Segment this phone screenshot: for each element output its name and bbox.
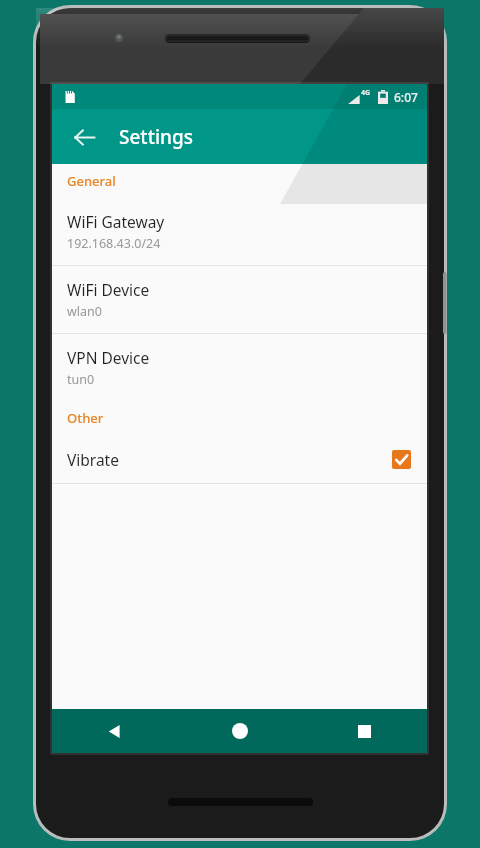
staticText: 6:07 bbox=[394, 89, 418, 105]
staticText: wlan0 bbox=[67, 303, 102, 320]
staticText: 4G bbox=[361, 88, 371, 98]
button[interactable]: WiFi Device bbox=[52, 266, 427, 333]
staticText: 192.168.43.0/24 bbox=[67, 235, 161, 252]
staticText: WiFi Device bbox=[67, 279, 150, 300]
button[interactable]: VPN Device bbox=[52, 334, 427, 401]
button[interactable]: Recent apps bbox=[302, 709, 427, 753]
staticText: WiFi Gateway bbox=[67, 211, 165, 232]
staticText: tun0 bbox=[67, 371, 95, 388]
staticText: Vibrate bbox=[67, 449, 119, 470]
staticText: General bbox=[67, 172, 116, 190]
staticText: VPN Device bbox=[67, 347, 150, 368]
button[interactable]: Back bbox=[52, 709, 177, 753]
button[interactable]: Home bbox=[177, 709, 302, 753]
button[interactable]: Vibrate bbox=[52, 435, 427, 483]
staticText: Settings bbox=[119, 124, 193, 150]
button[interactable]: WiFi Gateway bbox=[52, 198, 427, 265]
staticText: Other bbox=[67, 409, 104, 427]
button[interactable]: Back bbox=[63, 116, 105, 158]
